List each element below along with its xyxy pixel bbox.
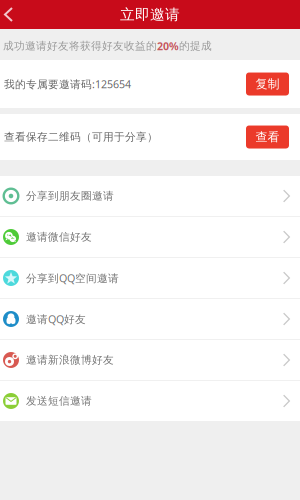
button[interactable]: 邀请新浪微博好友: [0, 340, 300, 380]
staticText: 的提成: [179, 39, 212, 52]
staticText: 20%: [157, 39, 179, 53]
button[interactable]: 查看: [246, 125, 289, 148]
button[interactable]: Back: [0, 0, 25, 29]
staticText: 邀请微信好友: [26, 230, 92, 243]
staticText: 分享到朋友圈邀请: [26, 189, 114, 202]
button[interactable]: 分享到QQ空间邀请: [0, 258, 300, 298]
button[interactable]: 发送短信邀请: [0, 381, 300, 421]
button[interactable]: 复制: [246, 72, 289, 95]
staticText: 成功邀请好友将获得好友收益的: [3, 39, 157, 52]
staticText: 查看: [255, 130, 279, 144]
button[interactable]: 邀请QQ好友: [0, 299, 300, 339]
staticText: 立即邀请: [120, 5, 180, 23]
button[interactable]: 邀请微信好友: [0, 217, 300, 257]
staticText: 邀请新浪微博好友: [26, 353, 114, 366]
staticText: 复制: [255, 77, 279, 91]
button[interactable]: 分享到朋友圈邀请: [0, 176, 300, 216]
staticText: 我的专属要邀请码:125654: [4, 77, 131, 91]
staticText: 查看保存二维码（可用于分享）: [4, 130, 158, 143]
staticText: 发送短信邀请: [26, 394, 92, 407]
staticText: 邀请QQ好友: [26, 312, 86, 326]
staticText: 分享到QQ空间邀请: [26, 271, 119, 285]
